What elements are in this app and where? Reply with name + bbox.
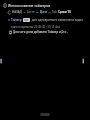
- staticText: одного времени 23:45:30 : 30,15 dsa: [11, 25, 60, 29]
- staticText: НАЗАД: [12, 10, 23, 14]
- staticText: — Тай: [48, 10, 58, 14]
- staticText: .: [67, 30, 68, 34]
- staticText: — Систе: [23, 10, 36, 14]
- staticText: Два: [61, 30, 67, 34]
- staticText: Для чего дана добавить Таймер и: [13, 30, 61, 34]
- button[interactable]: Home: [40, 113, 50, 116]
- staticText: — Врем: [36, 10, 48, 14]
- staticText: как: [24, 18, 29, 22]
- staticText: Сроки 15: [58, 10, 71, 14]
- button[interactable]: Article: [2, 2, 51, 8]
- staticText: Использование таймеров: [8, 3, 51, 7]
- staticText: Таймер: [11, 18, 23, 22]
- other: Article: [3, 3, 7, 8]
- staticText: для однократного выполнени задач: [31, 18, 83, 22]
